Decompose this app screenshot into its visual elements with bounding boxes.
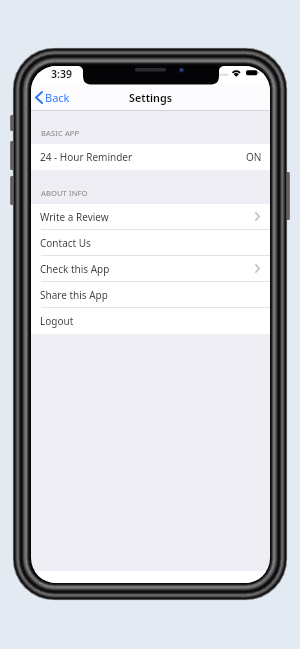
button[interactable]: Share this App	[31, 282, 270, 308]
staticText: BASIC APP	[41, 128, 80, 138]
staticText: ON	[246, 150, 262, 164]
staticText: Contact Us	[40, 236, 91, 250]
button[interactable]: Write a Review	[31, 204, 270, 230]
button[interactable]: 24 - Hour Reminder	[31, 144, 270, 170]
button[interactable]: Contact Us	[31, 230, 270, 256]
button[interactable]: Logout	[31, 308, 270, 334]
staticText: Write a Review	[40, 210, 109, 224]
staticText: ABOUT INFO	[41, 188, 88, 198]
staticText: Check this App	[40, 262, 110, 276]
button[interactable]: Check this App	[31, 256, 270, 282]
staticText: 3:39	[51, 67, 72, 81]
staticText: Logout	[40, 314, 74, 328]
staticText: Back	[45, 90, 70, 105]
button[interactable]: Back	[31, 87, 78, 108]
staticText: Settings	[129, 90, 173, 105]
staticText: Share this App	[40, 288, 108, 302]
staticText: 24 - Hour Reminder	[40, 150, 133, 164]
